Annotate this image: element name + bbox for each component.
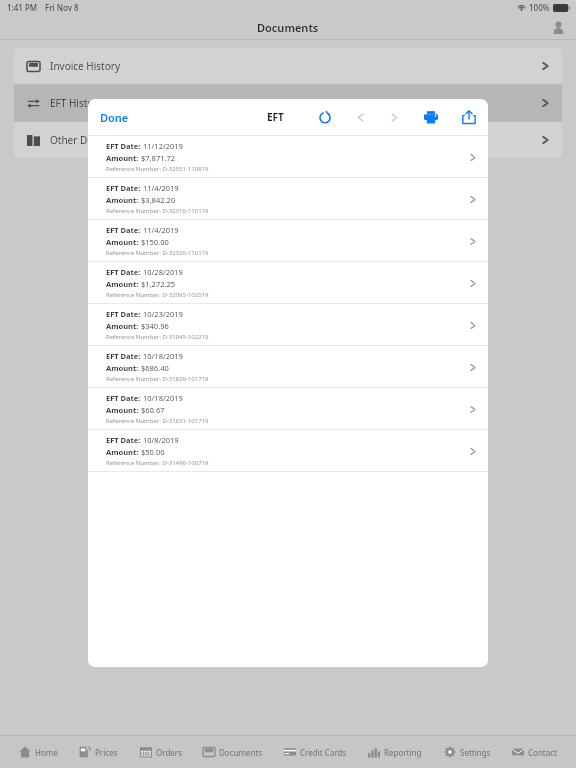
staticText: Prices [95,747,118,758]
staticText: Documents [257,20,319,35]
staticText: Amount: [106,153,141,163]
staticText: Done [100,110,129,125]
staticText: Amount: [106,321,141,331]
button[interactable]: EFT Date: [88,136,488,178]
staticText: $3,842.20 [141,195,176,205]
button[interactable]: Home [17,736,60,768]
button[interactable]: Prices [77,736,120,768]
staticText: Reference Number: D-32320-110119 [106,249,209,257]
staticText: Orders [156,747,182,758]
staticText: Amount: [106,363,141,373]
staticText: 11/12/2019 [143,141,183,151]
staticText: EFT Date: [106,141,143,151]
staticText: Other Documents [50,133,134,147]
staticText: 10/28/2019 [143,267,183,277]
staticText: Reference Number: D-31496-100719 [106,459,209,467]
staticText: $7,871.72 [141,153,176,163]
staticText: $150.00 [141,237,169,247]
staticText: Reference Number: D-31945-102219 [106,333,209,341]
staticText: Contact [528,747,557,758]
button[interactable]: Refresh [314,106,336,128]
staticText: Reference Number: D-31829-101719 [106,375,209,383]
staticText: Home [35,747,58,758]
button[interactable]: Orders [138,736,184,768]
button[interactable]: Settings [442,736,493,768]
staticText: EFT Date: [106,351,143,361]
staticText: Invoice History [50,59,120,73]
staticText: Settings [460,747,491,758]
button[interactable]: Other Documents [14,122,562,158]
staticText: EFT Date: [106,267,143,277]
button[interactable]: Invoice History [14,48,562,84]
staticText: Reporting [384,747,422,758]
button[interactable]: EFT Date: [88,304,488,346]
staticText: Reference Number: D-32316-110119 [106,207,209,215]
button[interactable]: Done [94,106,135,129]
staticText: 10/18/2019 [143,351,183,361]
button[interactable]: Print [420,106,442,128]
button[interactable]: Contact [510,736,559,768]
staticText: Amount: [106,447,141,457]
staticText: Amount: [106,237,141,247]
staticText: Fri Nov 8 [45,2,79,13]
staticText: $340.96 [141,321,169,331]
button[interactable]: Share [458,106,480,128]
staticText: 10/8/2019 [143,435,179,445]
staticText: 11/4/2019 [143,225,179,235]
staticText: Reference Number: D-31831-101719 [106,417,209,425]
button[interactable]: EFT Date: [88,178,488,220]
staticText: EFT Date: [106,393,143,403]
staticText: EFT Date: [106,225,143,235]
button[interactable]: EFT Date: [88,262,488,304]
staticText: $1,272.25 [141,279,176,289]
button[interactable]: Reporting [366,736,424,768]
staticText: EFT History [50,96,103,110]
staticText: 10/23/2019 [143,309,183,319]
button[interactable]: EFT Date: [88,220,488,262]
button[interactable]: EFT History [14,85,562,121]
staticText: Reference Number: D-32095-102519 [106,291,209,299]
button[interactable]: Credit Cards [282,736,349,768]
button[interactable]: Documents [201,736,265,768]
staticText: 10/18/2019 [143,393,183,403]
staticText: $686.40 [141,363,169,373]
staticText: 1:41 PM [7,2,38,13]
staticText: Amount: [106,195,141,205]
button[interactable]: EFT Date: [88,346,488,388]
staticText: Reference Number: D-32551-110819 [106,165,209,173]
staticText: Amount: [106,279,141,289]
button[interactable]: EFT Date: [88,388,488,430]
button[interactable]: Back [350,107,370,127]
staticText: Amount: [106,405,141,415]
button[interactable]: EFT Date: [88,430,488,472]
staticText: $60.67 [141,405,165,415]
staticText: 100% [529,2,550,13]
staticText: EFT Date: [106,435,143,445]
staticText: EFT [267,110,284,124]
staticText: 11/4/2019 [143,183,179,193]
staticText: EFT Date: [106,309,143,319]
staticText: Credit Cards [300,747,347,758]
button[interactable]: Forward [384,107,404,127]
staticText: EFT Date: [106,183,143,193]
staticText: $50.00 [141,447,165,457]
staticText: Documents [219,747,263,758]
button[interactable]: Account [548,17,568,37]
